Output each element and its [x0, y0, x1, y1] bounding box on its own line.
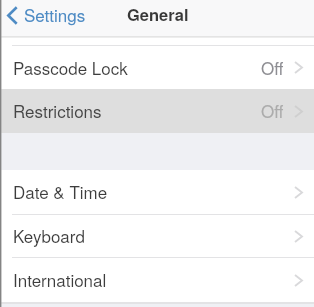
button[interactable]: Keyboard: [0, 215, 314, 257]
staticText: Restrictions: [13, 98, 102, 122]
button[interactable]: Back to Settings: [5, 2, 90, 28]
staticText: Date & Time: [13, 179, 108, 203]
other: Back to Settings: [7, 6, 18, 25]
staticText: Passcode Lock: [13, 55, 128, 79]
button[interactable]: Passcode Lock: [0, 46, 314, 89]
button[interactable]: Restrictions: [0, 89, 314, 133]
staticText: International: [13, 267, 107, 291]
staticText: General: [127, 2, 189, 26]
staticText: Off: [261, 98, 284, 122]
staticText: Off: [261, 55, 284, 79]
staticText: Keyboard: [13, 223, 85, 247]
staticText: Settings: [24, 2, 86, 26]
button[interactable]: Date & Time: [0, 170, 314, 214]
button[interactable]: International: [0, 258, 314, 302]
